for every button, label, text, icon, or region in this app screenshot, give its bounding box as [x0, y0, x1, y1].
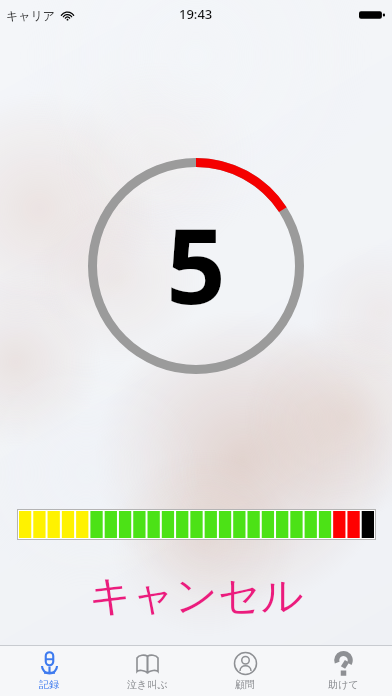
- button[interactable]: Help: [294, 646, 392, 691]
- button[interactable]: キャンセル: [0, 566, 392, 626]
- staticText: 顧問: [235, 678, 255, 691]
- staticText: 19:43: [179, 5, 213, 23]
- staticText: 5: [166, 193, 226, 335]
- staticText: キャンセル: [89, 570, 304, 623]
- staticText: 助けて: [328, 678, 359, 691]
- staticText: 記録: [39, 678, 59, 691]
- staticText: キャリア: [6, 8, 56, 23]
- staticText: 泣き叫ぶ: [127, 678, 168, 691]
- button[interactable]: Advisor: [196, 646, 294, 691]
- button[interactable]: Record: [0, 646, 98, 691]
- button[interactable]: Scream: [98, 646, 196, 691]
